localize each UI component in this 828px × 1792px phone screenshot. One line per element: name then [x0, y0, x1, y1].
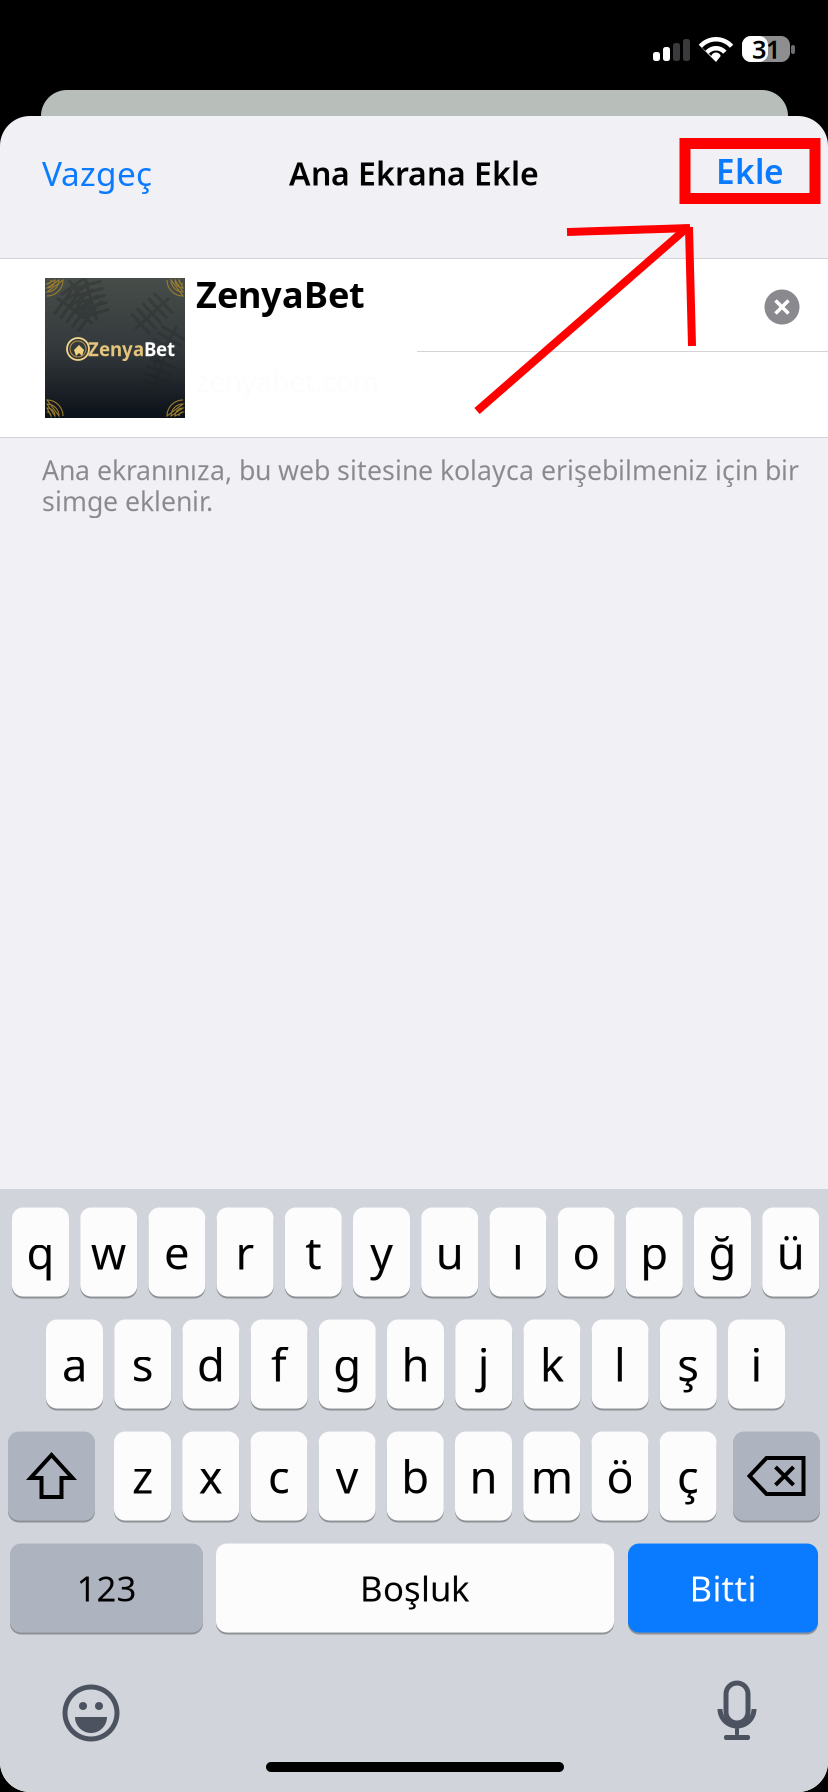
staticText: e [164, 1222, 190, 1282]
button[interactable]: p [626, 1206, 683, 1298]
staticText: ç [677, 1446, 699, 1506]
button[interactable]: Ekle [680, 138, 820, 204]
button[interactable]: c [250, 1430, 307, 1522]
staticText: Ekle [716, 149, 784, 193]
button[interactable]: Büyük harf [8, 1430, 95, 1522]
button[interactable]: l [592, 1318, 649, 1410]
button[interactable]: h [387, 1318, 444, 1410]
staticText: f [271, 1334, 287, 1394]
button[interactable]: f [251, 1318, 308, 1410]
staticText: t [305, 1222, 321, 1282]
staticText: p [640, 1222, 668, 1282]
button[interactable]: 123 [10, 1542, 203, 1634]
staticText: l [614, 1334, 626, 1394]
button[interactable]: n [455, 1430, 512, 1522]
staticText: ö [606, 1446, 633, 1506]
staticText: ü [777, 1222, 805, 1282]
button[interactable]: Emoji [45, 1667, 137, 1759]
button[interactable]: Sil [733, 1430, 820, 1522]
staticText: ş [677, 1334, 699, 1394]
staticText: x [199, 1446, 223, 1506]
button[interactable]: g [319, 1318, 376, 1410]
button[interactable]: ş [660, 1318, 717, 1410]
staticText: r [236, 1222, 255, 1282]
staticText: ZenyaBet [196, 270, 365, 318]
staticText: Bitti [689, 1565, 756, 1611]
button[interactable]: t [285, 1206, 342, 1298]
staticText: ğ [708, 1222, 736, 1282]
button[interactable]: Temizle [752, 277, 812, 337]
button[interactable]: Vazgeç [42, 143, 182, 203]
staticText: s [132, 1334, 154, 1394]
staticText: a [62, 1334, 87, 1394]
button[interactable]: i [728, 1318, 785, 1410]
staticText: m [531, 1446, 573, 1506]
staticText: Bet [144, 337, 175, 361]
staticText: Ana ekranınıza, bu web sitesine kolayca … [42, 452, 799, 488]
staticText: 123 [76, 1565, 136, 1611]
staticText: h [401, 1334, 429, 1394]
staticText: Boşluk [360, 1565, 470, 1611]
button[interactable]: v [319, 1430, 376, 1522]
button[interactable]: y [353, 1206, 410, 1298]
staticText: u [436, 1222, 464, 1282]
button[interactable]: s [114, 1318, 171, 1410]
button[interactable]: e [148, 1206, 205, 1298]
button[interactable]: a [46, 1318, 103, 1410]
staticText: Zenya [88, 337, 144, 361]
button[interactable]: ö [591, 1430, 648, 1522]
button[interactable]: q [12, 1206, 69, 1298]
button[interactable]: j [455, 1318, 512, 1410]
button[interactable]: r [217, 1206, 274, 1298]
staticText: q [26, 1222, 54, 1282]
button[interactable]: o [558, 1206, 615, 1298]
staticText: y [370, 1222, 393, 1282]
button[interactable]: x [182, 1430, 239, 1522]
button[interactable]: ğ [694, 1206, 751, 1298]
button[interactable]: d [182, 1318, 239, 1410]
button[interactable]: ı [489, 1206, 546, 1298]
staticText: n [469, 1446, 497, 1506]
staticText: ı [512, 1222, 524, 1282]
staticText: Vazgeç [42, 151, 152, 195]
button[interactable]: Dikte [691, 1665, 783, 1757]
button[interactable]: w [80, 1206, 137, 1298]
button[interactable]: Bitti [628, 1542, 818, 1634]
button[interactable]: b [387, 1430, 444, 1522]
staticText: v [336, 1446, 359, 1506]
button[interactable]: u [421, 1206, 478, 1298]
staticText: i [750, 1334, 762, 1394]
button[interactable]: ü [762, 1206, 819, 1298]
staticText: w [91, 1222, 127, 1282]
staticText: 31 [752, 32, 780, 66]
staticText: z [132, 1446, 153, 1506]
staticText: simge eklenir. [42, 483, 213, 519]
staticText: j [478, 1334, 490, 1394]
button[interactable]: z [114, 1430, 171, 1522]
button[interactable]: Boşluk [216, 1542, 614, 1634]
staticText: b [401, 1446, 429, 1506]
staticText: Ana Ekrana Ekle [289, 152, 539, 194]
staticText: d [197, 1334, 225, 1394]
staticText: c [268, 1446, 290, 1506]
button[interactable]: k [523, 1318, 580, 1410]
button[interactable]: m [523, 1430, 580, 1522]
staticText: g [333, 1334, 361, 1394]
staticText: o [573, 1222, 600, 1282]
button[interactable]: ç [660, 1430, 717, 1522]
staticText: k [540, 1334, 564, 1394]
